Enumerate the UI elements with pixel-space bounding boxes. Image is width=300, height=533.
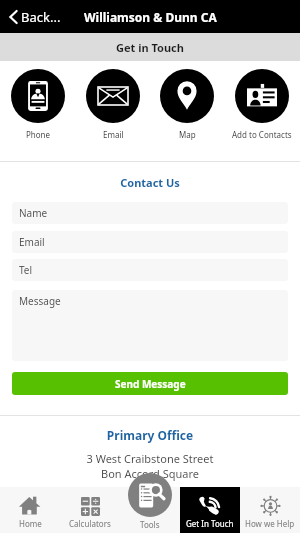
staticText: Home xyxy=(19,518,42,529)
staticText: How we Help xyxy=(245,518,295,529)
staticText: Tools xyxy=(140,519,160,530)
button[interactable]: Tel xyxy=(12,259,288,281)
staticText: Get in Touch xyxy=(116,40,184,55)
button[interactable]: Home xyxy=(0,487,60,533)
staticText: Tel xyxy=(19,263,33,277)
staticText: Map xyxy=(179,129,196,140)
button[interactable]: Message xyxy=(12,290,288,361)
button[interactable]: Name xyxy=(12,202,288,224)
button[interactable]: Phone xyxy=(2,69,74,140)
staticText: Primary Office xyxy=(0,427,300,443)
button[interactable]: Tools xyxy=(128,473,172,517)
staticText: Name xyxy=(19,206,48,220)
button[interactable]: Map xyxy=(151,69,223,140)
staticText: Phone xyxy=(26,129,51,140)
button[interactable]: Send Message xyxy=(12,372,288,395)
staticText: Email xyxy=(19,235,45,249)
staticText: Get In Touch xyxy=(186,518,234,529)
staticText: Back... xyxy=(21,8,61,26)
button[interactable]: How we Help xyxy=(240,487,300,533)
button[interactable]: Add to Contacts xyxy=(226,69,298,140)
button[interactable]: Calculators xyxy=(60,487,120,533)
staticText: Bon Accord Square xyxy=(0,466,300,481)
staticText: 3 West Craibstone Street xyxy=(0,451,300,466)
staticText: Williamson & Dunn CA xyxy=(84,9,217,25)
staticText: Add to Contacts xyxy=(232,129,292,140)
staticText: Contact Us xyxy=(0,175,300,190)
staticText: Message xyxy=(19,294,61,308)
button[interactable]: Back... xyxy=(0,2,70,32)
button[interactable]: Email xyxy=(12,231,288,253)
staticText: Calculators xyxy=(69,518,111,529)
staticText: Send Message xyxy=(115,377,186,391)
button[interactable]: Email xyxy=(77,69,149,140)
staticText: Email xyxy=(103,129,124,140)
button[interactable]: Get In Touch xyxy=(180,487,240,533)
